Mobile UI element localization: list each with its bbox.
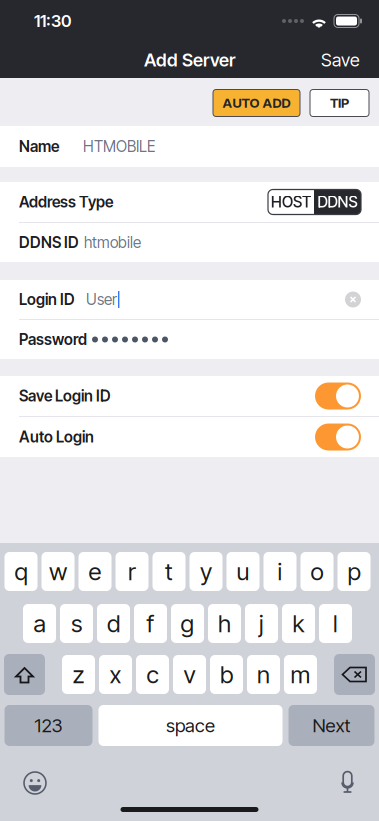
button[interactable]: h (208, 604, 241, 643)
button[interactable]: 123 (4, 705, 92, 746)
button[interactable]: b (210, 655, 243, 694)
staticText: User (86, 290, 117, 309)
button[interactable]: t (152, 552, 185, 591)
button[interactable]: s (60, 604, 93, 643)
button[interactable]: m (284, 655, 317, 694)
button[interactable]: r (115, 552, 148, 591)
staticText: j (259, 609, 264, 638)
button[interactable]: HOST (268, 189, 314, 214)
button[interactable]: space (98, 705, 282, 746)
staticText: space (166, 714, 215, 737)
button[interactable]: l (319, 604, 352, 643)
staticText: r (128, 557, 136, 586)
button[interactable]: q (4, 552, 37, 591)
staticText: o (310, 557, 323, 586)
staticText: y (200, 557, 212, 586)
staticText: f (146, 609, 154, 638)
staticText: w (49, 557, 67, 586)
button[interactable]: g (171, 604, 204, 643)
button[interactable]: i (263, 552, 296, 591)
staticText: HTMOBILE (83, 137, 155, 156)
button[interactable]: v (173, 655, 206, 694)
button[interactable]: Auto Login (0, 417, 379, 457)
button[interactable]: TIP (310, 89, 369, 116)
button[interactable]: c (136, 655, 169, 694)
staticText: DDNS ID (19, 233, 79, 252)
button[interactable]: u (226, 552, 259, 591)
staticText: 11:30 (34, 11, 71, 31)
staticText: t (165, 557, 173, 586)
staticText: Name (19, 137, 59, 156)
staticText: k (292, 609, 304, 638)
button[interactable]: w (41, 552, 74, 591)
staticText: Add Server (144, 49, 235, 71)
staticText: Auto Login (19, 428, 94, 446)
staticText: d (107, 609, 120, 638)
button[interactable]: n (247, 655, 280, 694)
staticText: Save (321, 49, 360, 71)
button[interactable]: x (99, 655, 132, 694)
staticText: a (33, 609, 45, 638)
staticText: z (72, 660, 84, 689)
staticText: AUTO ADD (222, 95, 290, 111)
staticText: h (218, 609, 231, 638)
button[interactable]: Next (288, 705, 374, 746)
staticText: DDNS (317, 193, 357, 211)
staticText: p (347, 557, 360, 586)
button[interactable]: e (78, 552, 111, 591)
staticText: Address Type (19, 193, 113, 211)
staticText: x (109, 660, 121, 689)
button[interactable]: Emoji keyboard (23, 771, 47, 795)
button[interactable]: Clear text (345, 291, 361, 307)
staticText: e (88, 557, 101, 586)
staticText: u (236, 557, 249, 586)
button[interactable]: Save Login ID (0, 376, 379, 416)
staticText: q (14, 557, 27, 586)
button[interactable]: AUTO ADD (213, 89, 300, 116)
button[interactable]: y (189, 552, 222, 591)
staticText: Login ID (19, 290, 75, 309)
button[interactable]: d (97, 604, 130, 643)
staticText: HOST (271, 193, 311, 211)
button[interactable]: DDNS (314, 189, 361, 214)
staticText: Save Login ID (19, 387, 111, 405)
button[interactable]: z (62, 655, 95, 694)
staticText: n (257, 660, 270, 689)
staticText: l (333, 609, 338, 638)
staticText: s (71, 609, 82, 638)
staticText: b (220, 660, 233, 689)
staticText: 123 (34, 714, 62, 737)
staticText: m (290, 660, 310, 689)
staticText: TIP (330, 95, 349, 111)
button[interactable]: Delete (334, 654, 375, 695)
button[interactable]: a (23, 604, 56, 643)
staticText: Password (19, 330, 87, 349)
staticText: g (180, 609, 194, 638)
button[interactable]: f (134, 604, 167, 643)
staticText: Next (312, 714, 350, 737)
staticText: c (146, 660, 158, 689)
staticText: i (277, 557, 282, 586)
button[interactable]: Save (302, 40, 379, 80)
button[interactable]: Shift (4, 654, 45, 695)
staticText: v (183, 660, 195, 689)
button[interactable]: j (245, 604, 278, 643)
staticText: htmobile (84, 233, 141, 252)
button[interactable]: o (300, 552, 333, 591)
button[interactable]: p (337, 552, 370, 591)
button[interactable]: Dictation (340, 771, 355, 795)
button[interactable]: k (282, 604, 315, 643)
